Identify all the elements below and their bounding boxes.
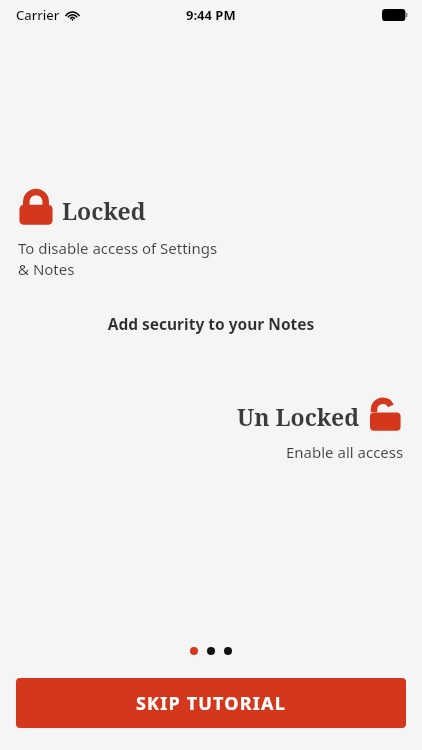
button[interactable]: SKIP TUTORIAL	[16, 678, 406, 728]
staticText: SKIP TUTORIAL	[136, 691, 286, 716]
staticText: Locked	[62, 195, 146, 226]
other: Unlocked	[370, 394, 404, 434]
button[interactable]	[190, 647, 198, 655]
staticText: Enable all access	[286, 442, 404, 462]
button[interactable]	[224, 647, 232, 655]
staticText: 9:44 PM	[186, 6, 236, 24]
staticText: Un Locked	[237, 401, 360, 432]
button[interactable]	[207, 647, 215, 655]
other: Locked	[18, 188, 54, 228]
staticText: Add security to your Notes	[0, 313, 422, 334]
staticText: Carrier	[16, 6, 60, 24]
staticText: To disable access of Settings & Notes	[18, 238, 218, 280]
